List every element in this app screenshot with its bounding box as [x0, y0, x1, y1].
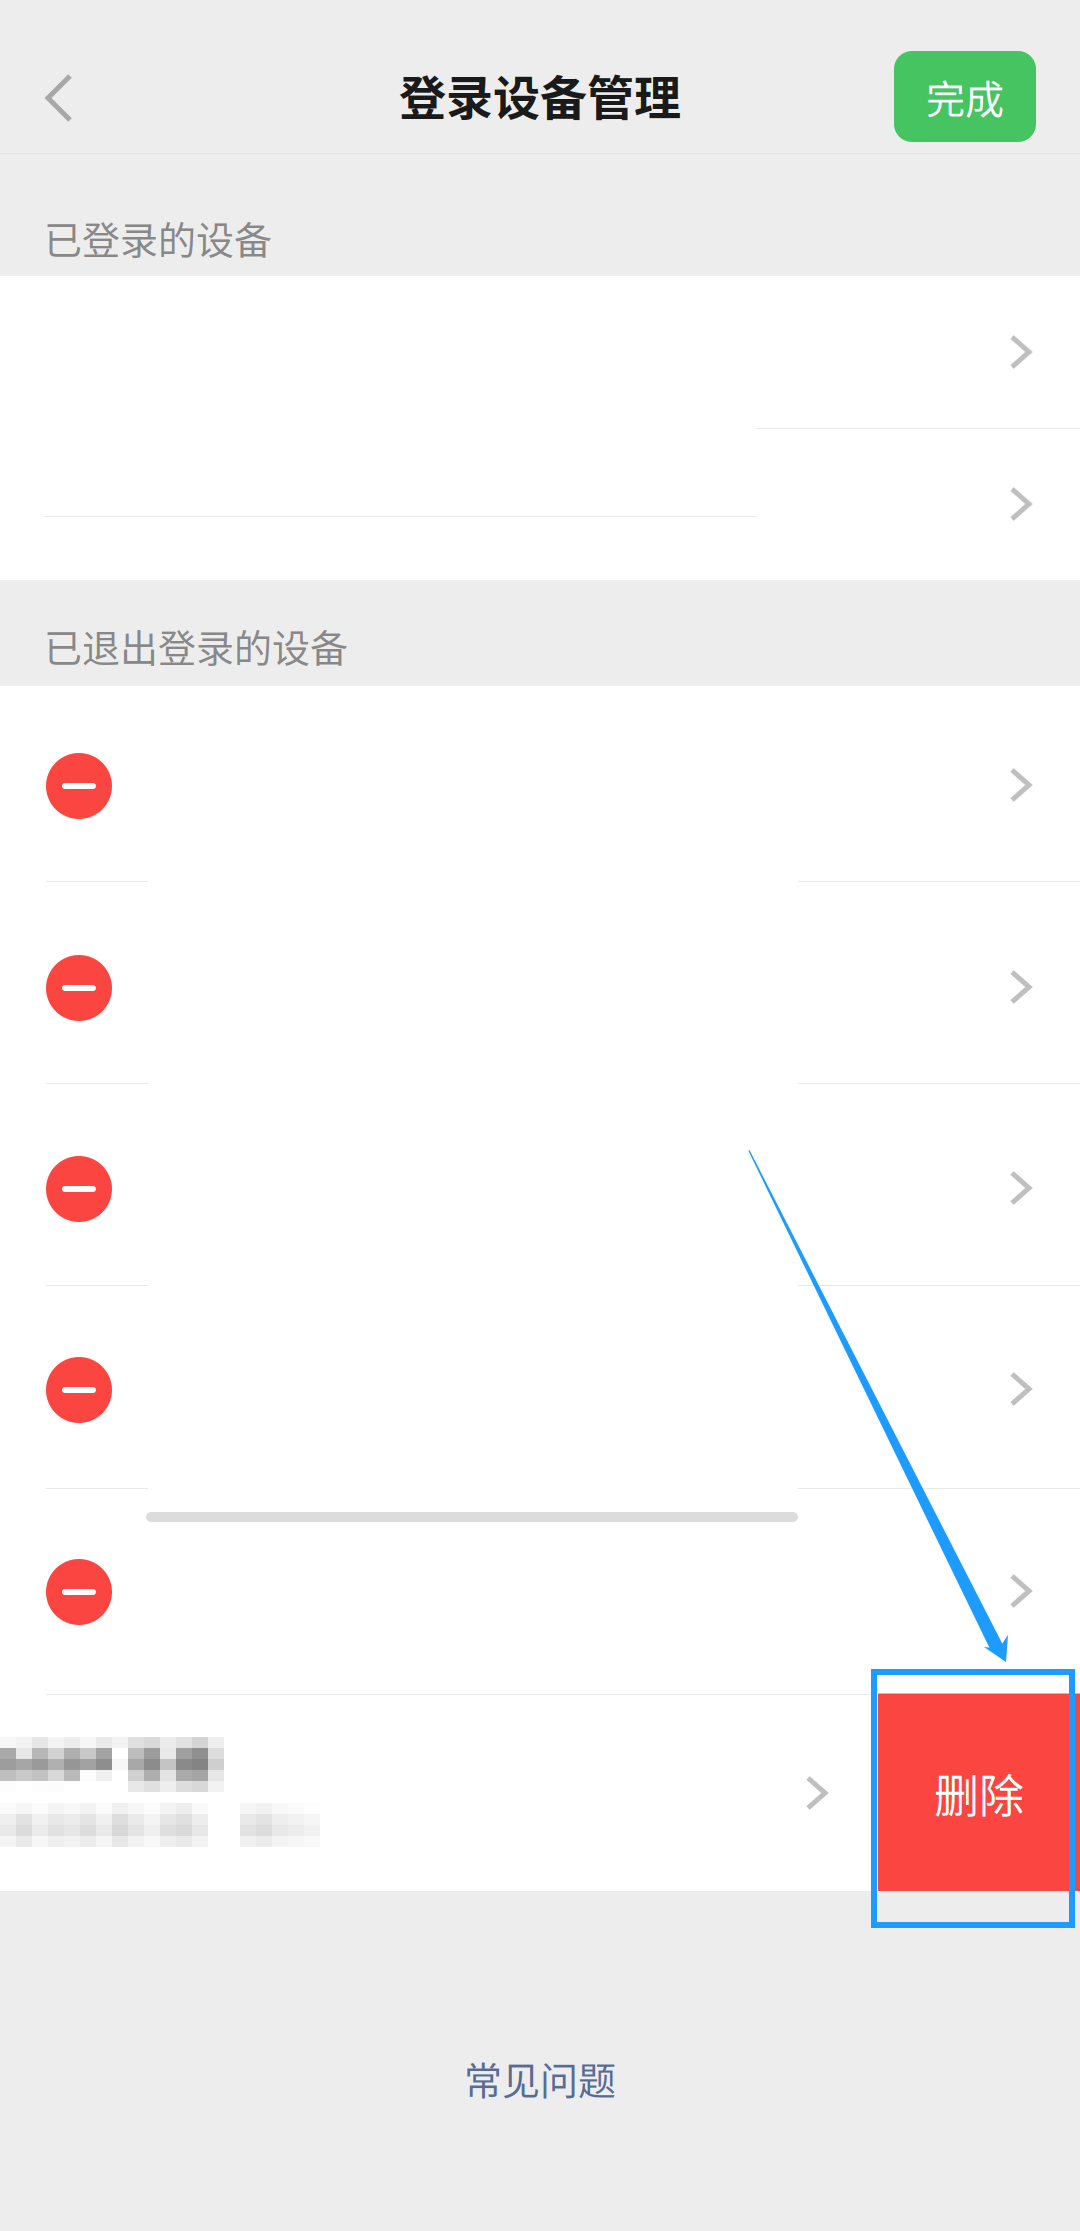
- staticText: 常见问题: [464, 2050, 616, 2105]
- staticText: 登录设备管理: [399, 60, 681, 129]
- staticText: 已退出登录的设备: [44, 618, 348, 673]
- button[interactable]: 完成: [894, 51, 1036, 142]
- button[interactable]: Back: [0, 36, 118, 153]
- button[interactable]: [0, 1489, 1080, 1694]
- button[interactable]: [0, 882, 1080, 1083]
- button[interactable]: [0, 686, 1080, 881]
- button[interactable]: [0, 1084, 1080, 1285]
- staticText: 删除: [934, 1760, 1024, 1826]
- staticText: 已登录的设备: [44, 210, 272, 265]
- button[interactable]: 删除: [878, 1693, 1080, 1892]
- staticText: 完成: [926, 68, 1004, 125]
- button[interactable]: [0, 1286, 1080, 1488]
- button[interactable]: 常见问题: [410, 2043, 670, 2113]
